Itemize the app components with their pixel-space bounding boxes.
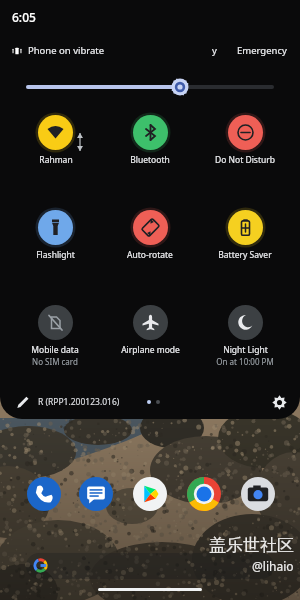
button[interactable]: Do Not Disturb <box>200 115 290 177</box>
staticText: @lihaio <box>252 558 294 574</box>
staticText: 6:05 <box>12 9 36 25</box>
staticText: Flashlight <box>36 249 75 261</box>
staticText: Night Light <box>223 344 268 356</box>
button[interactable]: Search <box>26 553 274 579</box>
button[interactable]: Messages <box>79 477 113 511</box>
button[interactable]: Mobile data <box>10 305 100 367</box>
staticText: Auto-rotate <box>127 249 173 261</box>
button[interactable]: y <box>206 44 223 57</box>
button[interactable]: Battery Saver <box>200 210 290 272</box>
button[interactable]: Edit <box>10 390 34 414</box>
staticText: Bluetooth <box>130 154 170 166</box>
button[interactable]: Airplane mode <box>105 305 195 367</box>
button[interactable]: Play Store <box>133 477 167 511</box>
button[interactable]: Emergency <box>237 44 289 57</box>
staticText: 盖乐世社区 <box>209 535 294 556</box>
staticText: Mobile data <box>31 344 79 356</box>
staticText: Battery Saver <box>218 249 272 261</box>
button[interactable]: Night Light <box>200 305 290 367</box>
button[interactable]: Flashlight <box>10 210 100 272</box>
button[interactable]: Phone <box>27 477 61 511</box>
button[interactable]: Camera <box>241 477 275 511</box>
button[interactable]: Chrome <box>187 477 221 511</box>
staticText: Rahman <box>39 154 73 166</box>
staticText: On at 10:00 PM <box>216 356 274 367</box>
staticText: Airplane mode <box>121 344 180 356</box>
button[interactable]: Bluetooth <box>105 115 195 177</box>
button[interactable]: Settings <box>266 389 292 415</box>
button[interactable]: Auto-rotate <box>105 210 195 272</box>
button[interactable]: Phone on vibrate <box>11 44 111 57</box>
staticText: R (RPP1.200123.016) <box>38 396 120 408</box>
button[interactable]: Brightness <box>0 75 300 99</box>
button[interactable]: Rahman <box>10 115 100 177</box>
staticText: Phone on vibrate <box>28 44 105 57</box>
staticText: Do Not Disturb <box>215 154 275 166</box>
staticText: No SIM card <box>32 356 78 367</box>
